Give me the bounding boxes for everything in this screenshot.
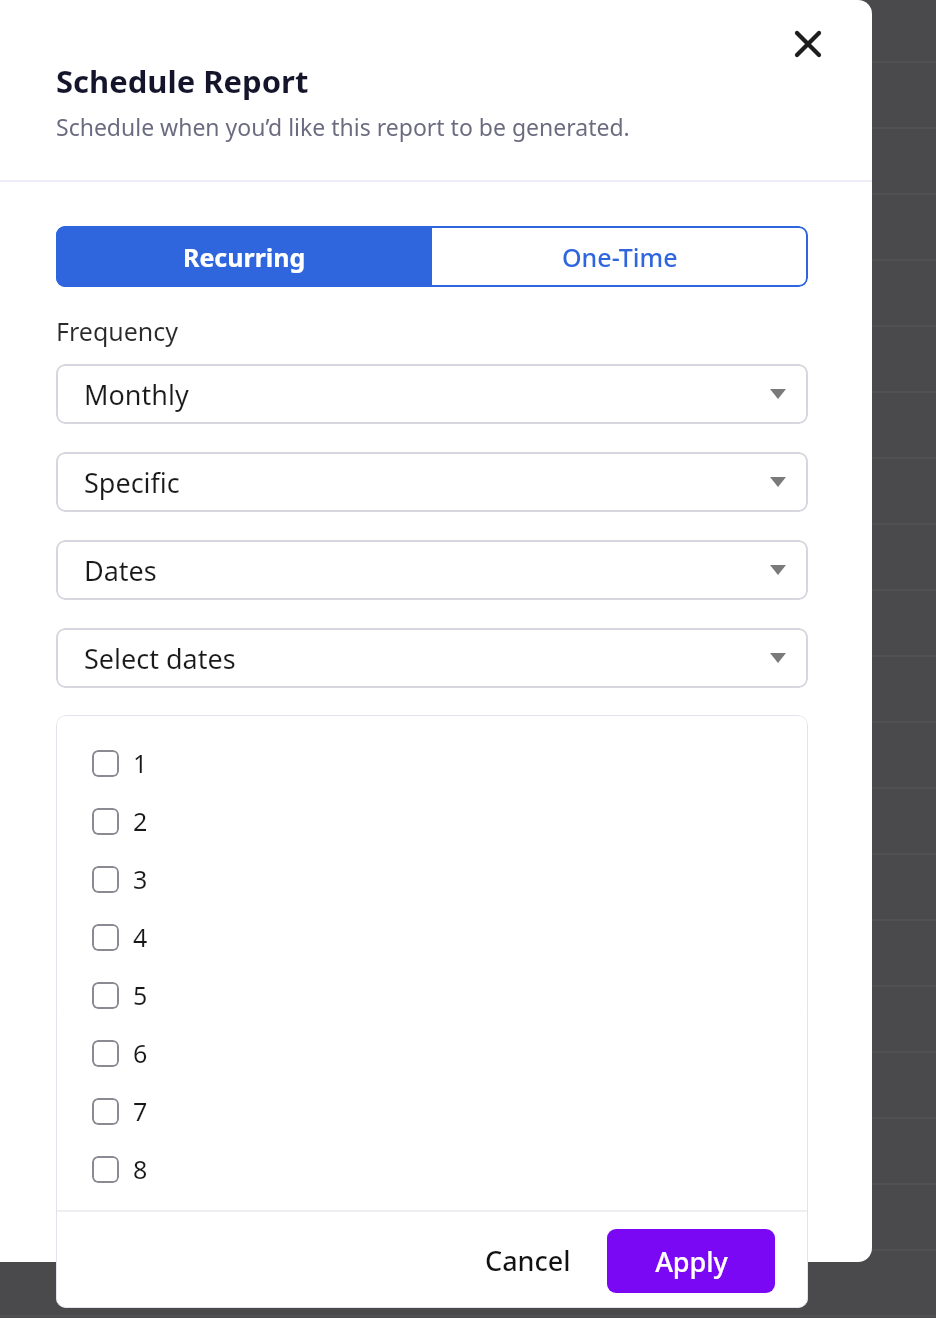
button[interactable]: One-Time — [432, 226, 808, 287]
staticText: 5 — [133, 978, 148, 1012]
staticText: Frequency — [56, 314, 179, 348]
button[interactable]: Recurring — [56, 226, 432, 287]
staticText: 8 — [133, 1152, 148, 1186]
button[interactable]: Apply — [607, 1229, 775, 1293]
staticText: 4 — [133, 920, 148, 954]
button[interactable]: Cancel — [467, 1228, 589, 1293]
button[interactable]: Select dates — [56, 628, 808, 688]
staticText: 3 — [133, 862, 148, 896]
staticText: Dates — [84, 552, 157, 589]
staticText: Recurring — [183, 240, 306, 274]
staticText: One-Time — [562, 240, 678, 274]
button[interactable]: 2 — [56, 792, 808, 850]
button[interactable]: Close — [784, 20, 832, 68]
button[interactable]: 3 — [56, 850, 808, 908]
staticText: 1 — [133, 746, 148, 780]
button[interactable]: 8 — [56, 1140, 808, 1198]
button[interactable]: 6 — [56, 1024, 808, 1082]
staticText: 2 — [133, 804, 148, 838]
staticText: Apply — [655, 1243, 728, 1280]
staticText: Schedule Report — [56, 60, 309, 102]
button[interactable]: 4 — [56, 908, 808, 966]
staticText: Specific — [84, 464, 180, 501]
button[interactable]: Dates — [56, 540, 808, 600]
staticText: 7 — [133, 1094, 148, 1128]
button[interactable]: 5 — [56, 966, 808, 1024]
staticText: Cancel — [485, 1242, 571, 1279]
staticText: Schedule when you’d like this report to … — [56, 111, 630, 142]
button[interactable]: 7 — [56, 1082, 808, 1140]
button[interactable]: Monthly — [56, 364, 808, 424]
staticText: 6 — [133, 1036, 148, 1070]
button[interactable]: Specific — [56, 452, 808, 512]
staticText: Monthly — [84, 376, 189, 413]
button[interactable]: 1 — [56, 734, 808, 792]
staticText: Select dates — [84, 640, 236, 677]
